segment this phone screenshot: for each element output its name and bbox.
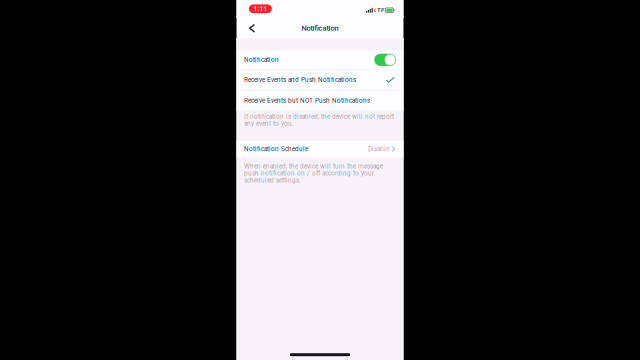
staticText: Notification Schedule (244, 145, 308, 153)
staticText: Notification (244, 56, 279, 64)
staticText: Receive Events but NOT Push Notification… (244, 97, 370, 104)
button[interactable]: Back (244, 18, 261, 38)
staticText: Receive Events and Push Notifications (244, 76, 356, 84)
staticText: 1:11 (253, 5, 267, 13)
button[interactable]: Notification Schedule (236, 141, 403, 157)
staticText: LTE (374, 7, 384, 14)
staticText: Notification (301, 24, 338, 33)
button[interactable]: Receive Events and Push Notifications (236, 69, 403, 90)
button[interactable]: Receive Events but NOT Push Notification… (236, 90, 403, 110)
staticText: Disable (368, 145, 389, 153)
staticText: When enabled, the device will turn the m… (244, 162, 383, 184)
staticText: If notification is disabled, the device … (244, 113, 394, 127)
button[interactable]: Notification (236, 50, 403, 69)
